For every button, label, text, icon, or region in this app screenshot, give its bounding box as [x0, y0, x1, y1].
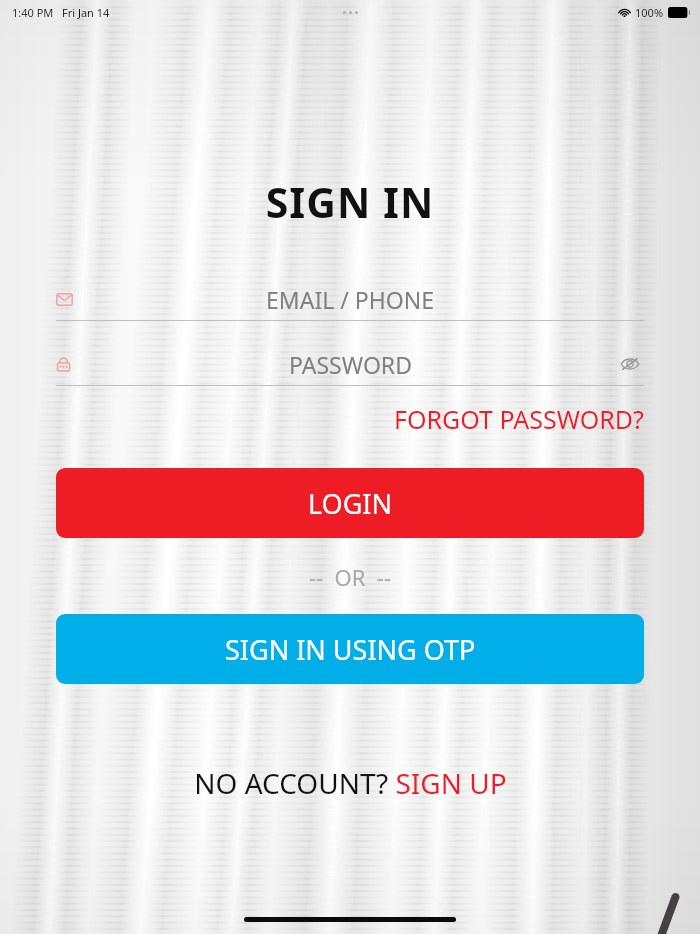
staticText: PASSWORD [289, 349, 412, 380]
staticText: 100% [635, 5, 664, 20]
staticText: NO ACCOUNT? SIGN UP [194, 764, 507, 802]
button[interactable]: Show password [616, 350, 644, 378]
button[interactable]: NO ACCOUNT? SIGN UP [0, 764, 700, 802]
button[interactable]: FORGOT PASSWORD? [394, 398, 644, 440]
staticText: LOGIN [308, 485, 393, 522]
staticText: SIGN IN [0, 174, 700, 230]
button[interactable]: SIGN IN USING OTP [56, 614, 644, 684]
staticText: 1:40 PM [12, 5, 54, 20]
staticText: -- OR -- [0, 562, 700, 592]
button[interactable]: LOGIN [56, 468, 644, 538]
staticText: EMAIL / PHONE [266, 284, 434, 315]
staticText: SIGN IN USING OTP [225, 631, 476, 668]
staticText: Fri Jan 14 [62, 5, 110, 20]
staticText: FORGOT PASSWORD? [394, 402, 644, 436]
